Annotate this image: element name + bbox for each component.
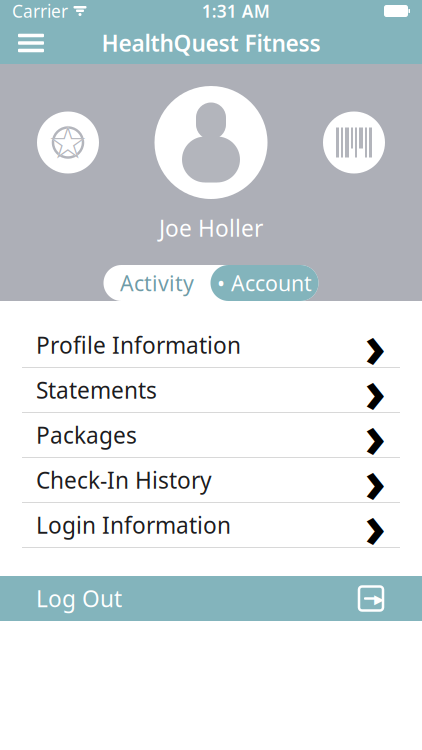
staticText: Joe Holler: [159, 213, 263, 243]
staticText: ›: [364, 486, 385, 564]
staticText: Packages: [36, 420, 137, 450]
button[interactable]: Menu: [8, 22, 54, 64]
button[interactable]: Packages: [0, 413, 422, 458]
staticText: Activity: [120, 269, 194, 297]
staticText: ›: [364, 351, 385, 429]
staticText: ★: [47, 117, 88, 168]
button[interactable]: • Account: [210, 265, 318, 301]
staticText: ▸: [374, 587, 384, 610]
staticText: ☆: [47, 117, 88, 168]
staticText: Carrier: [12, 0, 68, 22]
staticText: Check-In History: [36, 465, 212, 495]
button[interactable]: Statements: [0, 368, 422, 413]
button[interactable]: Activity: [103, 265, 210, 301]
staticText: Statements: [36, 375, 157, 405]
button[interactable]: Check-In History: [0, 458, 422, 503]
button[interactable]: Login Information: [0, 503, 422, 548]
staticText: Login Information: [36, 510, 231, 540]
button[interactable]: Membership barcode: [318, 106, 390, 178]
button[interactable]: Favorites: [32, 106, 104, 178]
button[interactable]: Profile Information: [0, 323, 422, 368]
staticText: Profile Information: [36, 330, 241, 360]
staticText: Log Out: [36, 583, 122, 613]
staticText: ›: [364, 396, 385, 474]
staticText: • Account: [217, 269, 312, 297]
staticText: 1:31 AM: [202, 0, 270, 22]
button[interactable]: Log Out: [0, 576, 422, 621]
staticText: ›: [364, 306, 385, 384]
staticText: HealthQuest Fitness: [101, 28, 320, 58]
staticText: ›: [364, 441, 385, 519]
